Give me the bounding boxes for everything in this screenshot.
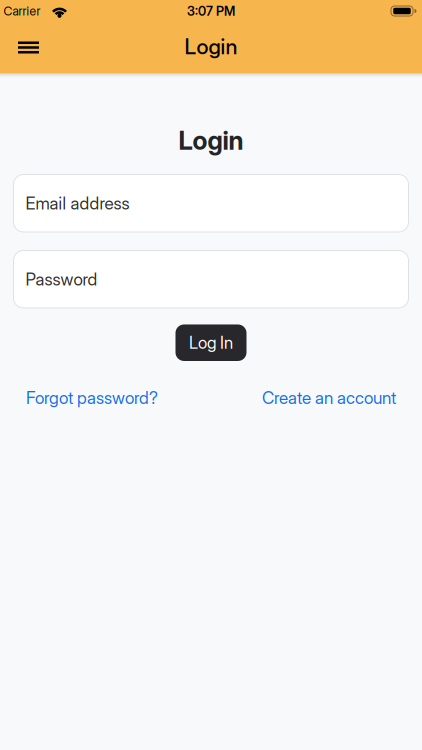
- button[interactable]: Menu: [10, 33, 47, 61]
- button[interactable]: Forgot password?: [26, 387, 158, 408]
- staticText: Forgot password?: [26, 387, 158, 408]
- button[interactable]: Log In: [175, 324, 246, 361]
- button[interactable]: Create an account: [262, 387, 396, 408]
- textField[interactable]: Email address: [25, 193, 396, 213]
- staticText: Email address: [25, 193, 129, 213]
- staticText: Login: [184, 34, 237, 59]
- staticText: Log In: [189, 333, 233, 353]
- textField[interactable]: Password: [25, 269, 396, 289]
- staticText: Carrier: [3, 4, 40, 18]
- staticText: Password: [25, 269, 97, 289]
- staticText: 3:07 PM: [187, 3, 235, 19]
- staticText: Create an account: [262, 387, 396, 408]
- staticText: Login: [178, 125, 243, 156]
